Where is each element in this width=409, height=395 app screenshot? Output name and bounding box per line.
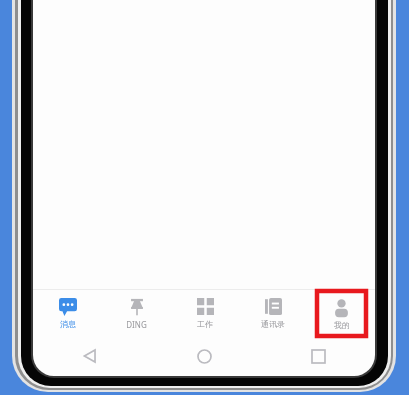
button[interactable]: DING: [102, 290, 171, 336]
staticText: 消息: [60, 319, 76, 329]
button[interactable]: 我的: [317, 291, 366, 336]
staticText: DING: [126, 319, 147, 330]
staticText: 工作: [197, 319, 213, 329]
button[interactable]: 工作: [171, 290, 239, 336]
staticText: 我的: [334, 320, 350, 330]
button[interactable]: Home: [188, 340, 220, 372]
button[interactable]: 通讯录: [239, 290, 307, 336]
button[interactable]: Recents: [302, 340, 334, 372]
button[interactable]: 消息: [33, 290, 102, 336]
button[interactable]: Back: [74, 340, 106, 372]
staticText: 通讯录: [261, 319, 285, 329]
